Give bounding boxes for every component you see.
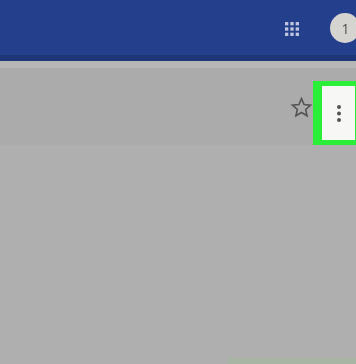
button[interactable]: Star <box>285 91 317 123</box>
staticText: 1 <box>341 19 350 38</box>
button[interactable]: Edit <box>321 91 353 123</box>
button[interactable]: Google apps <box>281 18 303 40</box>
button[interactable]: Account <box>330 13 356 43</box>
button[interactable]: More options <box>313 81 356 145</box>
